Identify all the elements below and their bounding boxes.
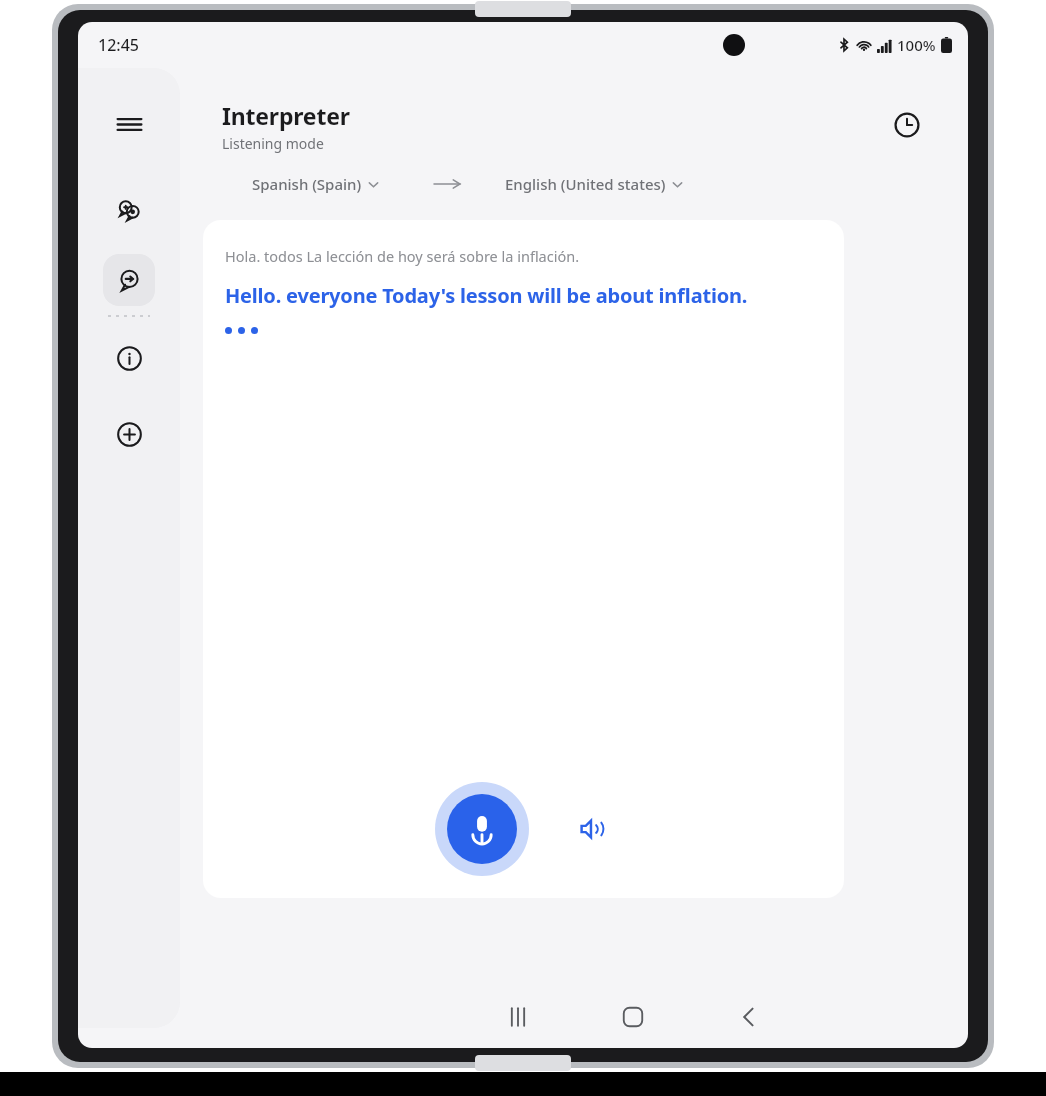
button[interactable]: Information xyxy=(103,332,155,384)
button[interactable]: Menu xyxy=(103,98,155,150)
staticText: English (United states) xyxy=(505,174,666,194)
button[interactable]: Conversation mode xyxy=(103,184,155,236)
button[interactable]: Recents xyxy=(492,991,544,1043)
button[interactable]: Speaker xyxy=(569,806,615,852)
staticText: Hola. todos La lección de hoy será sobre… xyxy=(225,246,580,266)
staticText: Interpreter xyxy=(222,100,350,131)
button[interactable]: Home xyxy=(607,991,659,1043)
button[interactable]: English (United states) xyxy=(475,174,712,194)
button[interactable]: Microphone xyxy=(435,782,529,876)
button[interactable]: Add xyxy=(103,408,155,460)
staticText: Spanish (Spain) xyxy=(252,174,362,194)
staticText: 100% xyxy=(897,35,936,55)
staticText: 12:45 xyxy=(98,34,139,56)
staticText: Listening mode xyxy=(222,134,324,153)
button[interactable]: History xyxy=(884,102,930,148)
button[interactable]: Spanish (Spain) xyxy=(212,174,419,194)
button[interactable]: Interpreter mode xyxy=(103,254,155,306)
staticText: Hello. everyone Today's lesson will be a… xyxy=(225,282,748,309)
button[interactable]: Back xyxy=(723,991,775,1043)
